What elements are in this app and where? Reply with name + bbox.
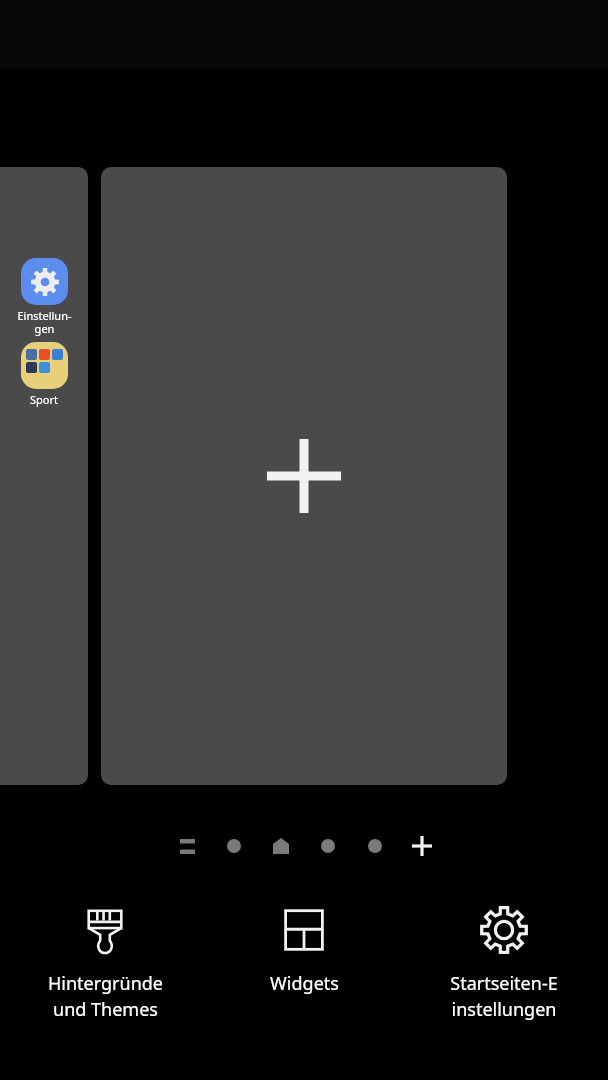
button[interactable]: Sport Ordner [21, 342, 68, 389]
staticText: Hintergründe und Themes [48, 971, 163, 1021]
button[interactable]: Widgets [209, 893, 399, 996]
staticText: Startseiten-E instellungen [450, 971, 558, 1021]
staticText: Einstellun- gen [17, 308, 72, 336]
button[interactable]: Einstellungen [21, 258, 68, 305]
button[interactable]: Startseite [267, 832, 295, 860]
button[interactable]: Neue Seite hinzufügen [101, 167, 507, 785]
button[interactable]: Seite [361, 832, 389, 860]
staticText: Sport [30, 392, 58, 407]
button[interactable]: Startseiten-E instellungen [409, 893, 599, 1021]
button[interactable]: Seitenübersicht [173, 832, 201, 860]
button[interactable]: Seite hinzufügen [408, 832, 436, 860]
button[interactable]: Seite [220, 832, 248, 860]
button[interactable]: Vorherige Startseite [0, 167, 88, 785]
staticText: Widgets [270, 971, 339, 996]
button[interactable]: Hintergründe und Themes [10, 893, 200, 1021]
button[interactable]: Seite [314, 832, 342, 860]
